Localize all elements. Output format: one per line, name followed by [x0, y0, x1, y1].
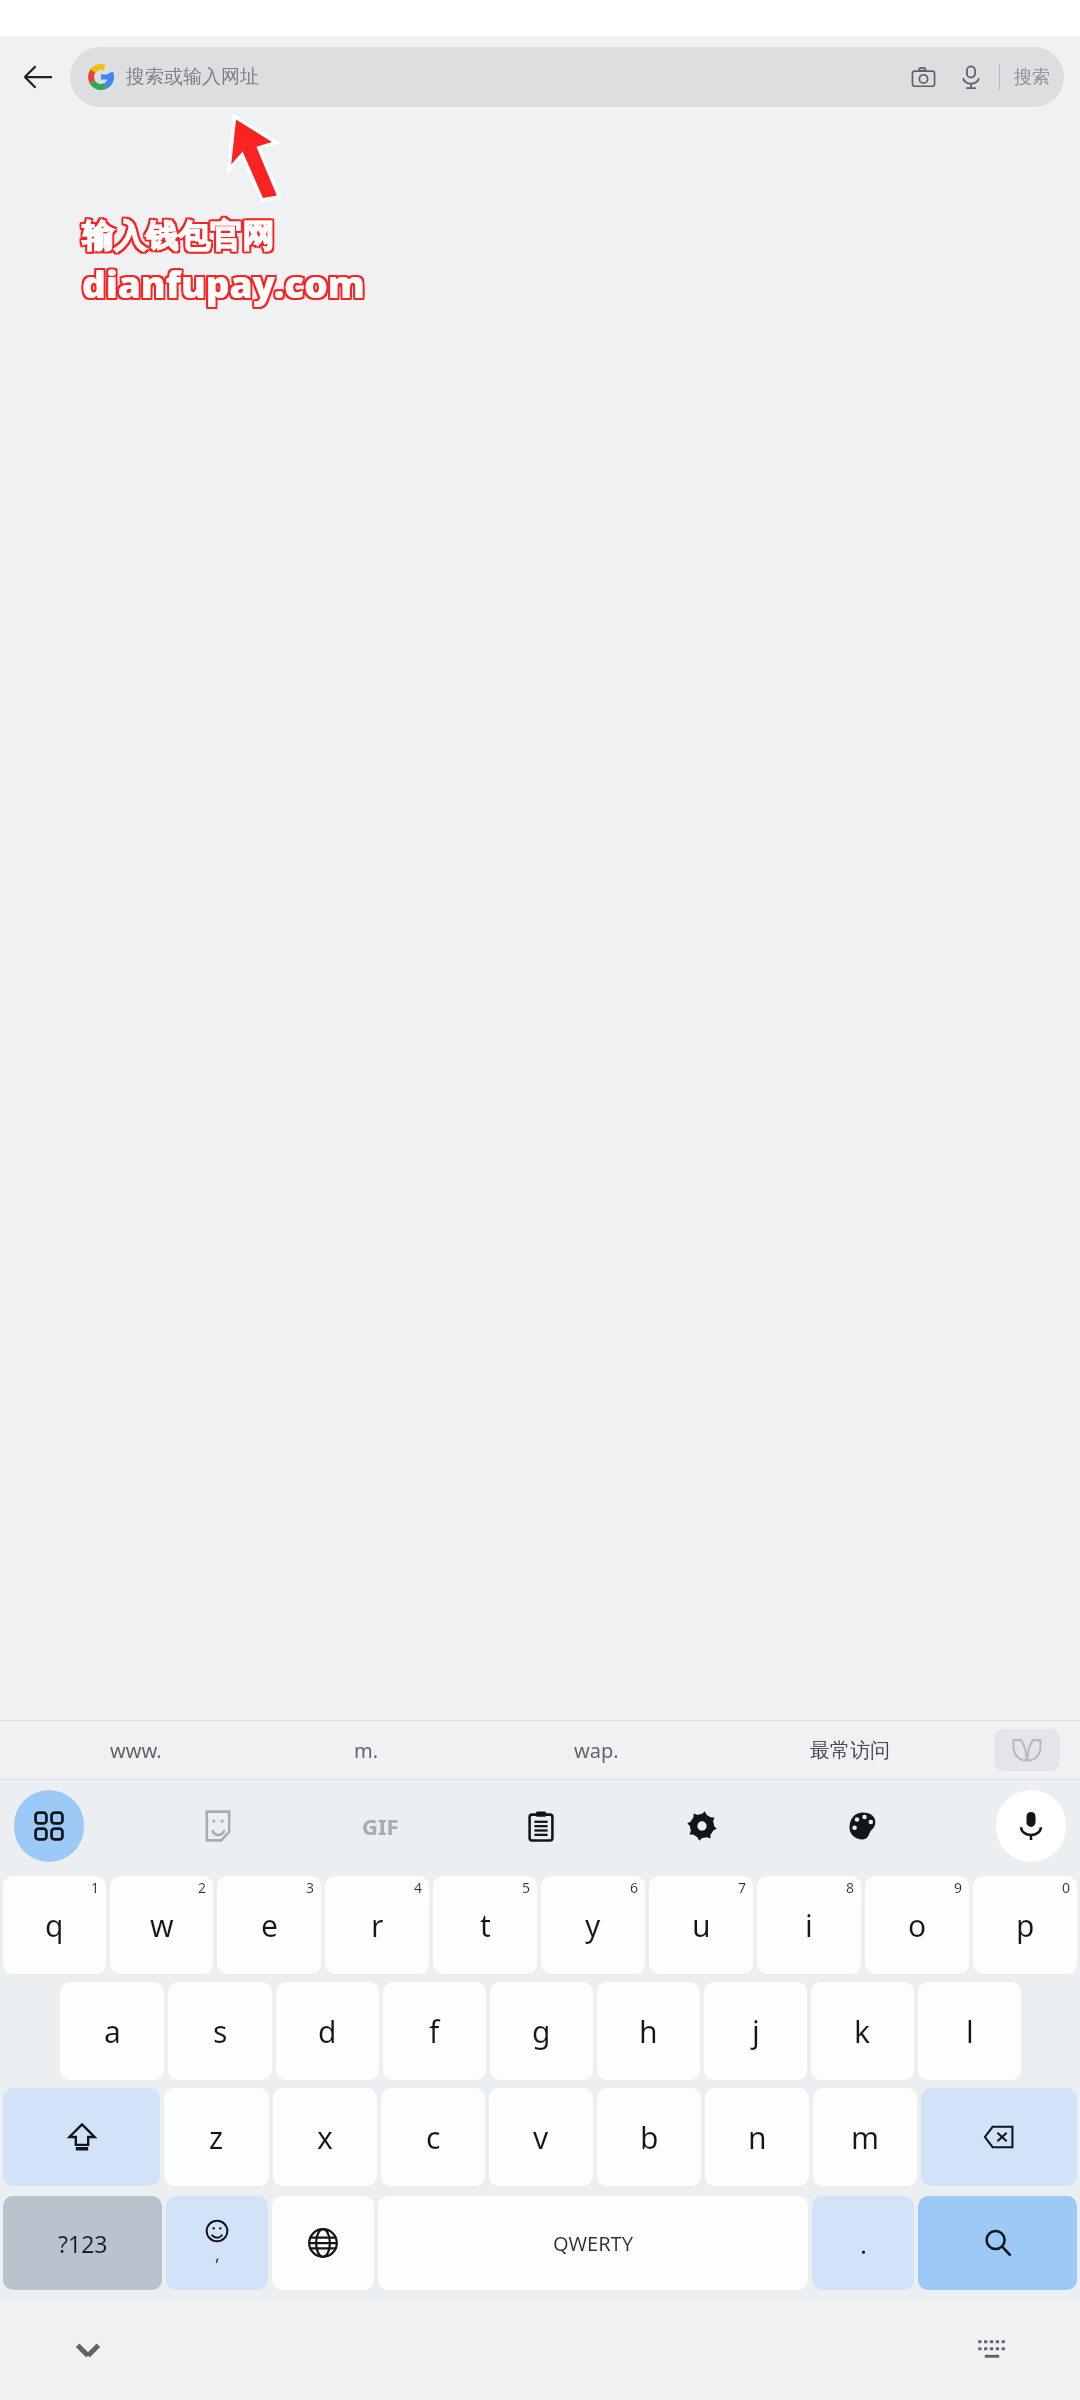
- staticText: s: [213, 2011, 228, 2052]
- button[interactable]: QWERTY: [378, 2196, 808, 2290]
- staticText: k: [854, 2011, 871, 2052]
- button[interactable]: u: [649, 1876, 753, 1974]
- staticText: 3: [306, 1878, 315, 1897]
- button[interactable]: c: [381, 2088, 485, 2186]
- button[interactable]: q: [3, 1876, 106, 1974]
- staticText: ?123: [58, 2228, 108, 2259]
- staticText: u: [692, 1905, 711, 1946]
- button[interactable]: Stickers: [190, 1798, 246, 1854]
- button[interactable]: j: [704, 1982, 807, 2080]
- staticText: l: [966, 2011, 974, 2052]
- button[interactable]: o: [865, 1876, 969, 1974]
- button[interactable]: m: [813, 2088, 917, 2186]
- button[interactable]: Input method logo: [994, 1729, 1060, 1771]
- staticText: f: [429, 2011, 440, 2052]
- button[interactable]: a: [60, 1982, 164, 2080]
- staticText: GIF: [362, 1811, 399, 1841]
- button[interactable]: Emoji: [166, 2196, 268, 2290]
- staticText: ,: [215, 2242, 220, 2267]
- staticText: 输入钱包官网: [82, 218, 274, 258]
- button[interactable]: GIF: [352, 1798, 408, 1854]
- staticText: b: [640, 2117, 659, 2158]
- button[interactable]: Toolbar menu: [14, 1790, 84, 1862]
- button[interactable]: z: [164, 2088, 269, 2186]
- button[interactable]: Settings: [674, 1798, 730, 1854]
- staticText: 输入钱包官网: [80, 216, 272, 256]
- button[interactable]: Shift: [3, 2088, 160, 2186]
- staticText: 6: [630, 1878, 639, 1897]
- button[interactable]: h: [597, 1982, 700, 2080]
- staticText: d: [318, 2011, 337, 2052]
- button[interactable]: www.: [20, 1720, 251, 1780]
- staticText: j: [752, 2011, 760, 2052]
- staticText: 最常访问: [810, 1738, 890, 1763]
- button[interactable]: k: [811, 1982, 914, 2080]
- button[interactable]: Backspace: [921, 2088, 1077, 2186]
- button[interactable]: Change language: [272, 2196, 374, 2290]
- button[interactable]: Voice input: [996, 1790, 1066, 1862]
- staticText: dianfupay.com: [84, 258, 367, 308]
- staticText: 输入钱包官网: [80, 218, 272, 258]
- staticText: wap.: [574, 1737, 619, 1764]
- staticText: 搜索: [1014, 66, 1050, 89]
- button[interactable]: b: [597, 2088, 701, 2186]
- button[interactable]: 最常访问: [711, 1720, 988, 1780]
- staticText: q: [45, 1905, 64, 1946]
- button[interactable]: v: [489, 2088, 593, 2186]
- staticText: 7: [738, 1878, 747, 1897]
- button[interactable]: g: [490, 1982, 593, 2080]
- staticText: v: [533, 2117, 549, 2158]
- button[interactable]: s: [168, 1982, 272, 2080]
- button[interactable]: r: [325, 1876, 429, 1974]
- button[interactable]: Hide keyboard: [60, 2322, 116, 2378]
- button[interactable]: i: [757, 1876, 861, 1974]
- button[interactable]: x: [273, 2088, 377, 2186]
- staticText: .: [860, 2226, 867, 2261]
- staticText: n: [748, 2117, 767, 2158]
- staticText: 4: [414, 1878, 423, 1897]
- staticText: dianfupay.com: [84, 260, 367, 310]
- button[interactable]: ?123: [3, 2196, 162, 2290]
- button[interactable]: 搜索: [1014, 66, 1050, 89]
- button[interactable]: Switch keyboard: [964, 2322, 1020, 2378]
- staticText: e: [261, 1905, 278, 1946]
- staticText: 输入钱包官网: [82, 216, 274, 256]
- staticText: dianfupay.com: [82, 258, 365, 308]
- button[interactable]: t: [433, 1876, 537, 1974]
- staticText: dianfupay.com: [84, 256, 367, 306]
- staticText: 搜索或输入网址: [126, 65, 259, 89]
- button[interactable]: y: [541, 1876, 645, 1974]
- staticText: p: [1016, 1905, 1035, 1946]
- button[interactable]: Clipboard: [513, 1798, 569, 1854]
- staticText: 输入钱包官网: [84, 216, 276, 256]
- staticText: 输入钱包官网: [82, 214, 274, 254]
- button[interactable]: d: [276, 1982, 379, 2080]
- button[interactable]: wap.: [481, 1720, 711, 1780]
- button[interactable]: Voice search: [951, 57, 991, 97]
- button[interactable]: f: [383, 1982, 486, 2080]
- staticText: x: [317, 2117, 333, 2158]
- button[interactable]: e: [217, 1876, 321, 1974]
- staticText: 输入钱包官网: [84, 214, 276, 254]
- staticText: w: [150, 1905, 174, 1946]
- staticText: r: [371, 1905, 384, 1946]
- staticText: 输入钱包官网: [80, 214, 272, 254]
- staticText: t: [480, 1905, 491, 1946]
- staticText: i: [805, 1905, 813, 1946]
- staticText: QWERTY: [553, 2230, 634, 2257]
- button[interactable]: 搜索或输入网址: [70, 47, 1064, 107]
- staticText: a: [104, 2011, 121, 2052]
- button[interactable]: Search: [918, 2196, 1077, 2290]
- button[interactable]: p: [973, 1876, 1077, 1974]
- button[interactable]: m.: [251, 1720, 481, 1780]
- button[interactable]: Lens camera search: [903, 57, 943, 97]
- button[interactable]: Back: [10, 49, 66, 105]
- button[interactable]: w: [110, 1876, 213, 1974]
- button[interactable]: l: [918, 1982, 1021, 2080]
- button[interactable]: .: [812, 2196, 914, 2290]
- staticText: dianfupay.com: [80, 258, 363, 308]
- button[interactable]: Themes: [835, 1798, 891, 1854]
- staticText: 0: [1062, 1878, 1071, 1897]
- button[interactable]: n: [705, 2088, 809, 2186]
- staticText: c: [426, 2117, 441, 2158]
